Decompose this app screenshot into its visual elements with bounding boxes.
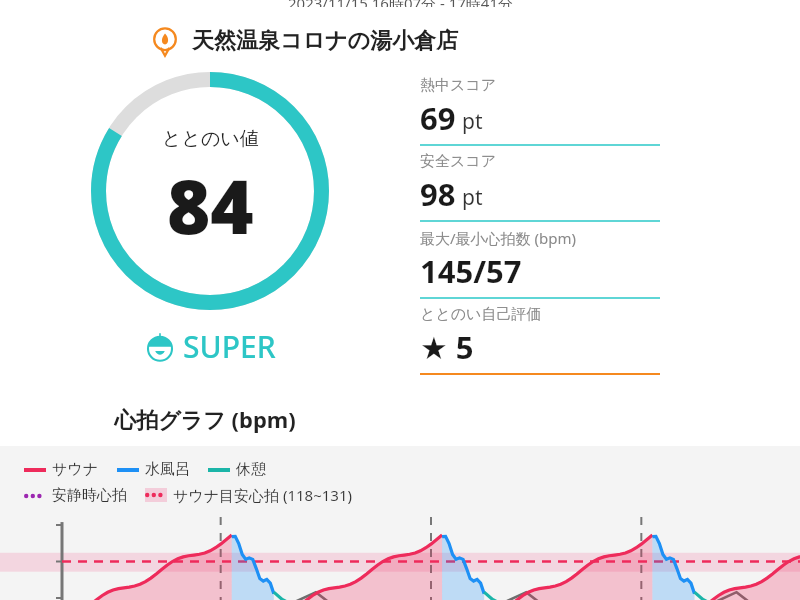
staticText: ととのい自己評価 xyxy=(420,305,542,324)
staticText: ★ 5 xyxy=(420,326,474,368)
staticText: 145/57 xyxy=(420,250,522,292)
staticText: 天然温泉コロナの湯小倉店 xyxy=(192,27,459,55)
staticText: 心拍グラフ (bpm) xyxy=(0,404,410,434)
staticText: ととのい値 xyxy=(162,127,259,151)
button[interactable]: Super rank mascot xyxy=(145,326,276,367)
staticText: 熱中スコア xyxy=(420,76,497,95)
other: Super rank mascot xyxy=(145,332,175,362)
button[interactable]: ととのい自己評価 xyxy=(420,299,660,375)
button[interactable]: Sauna location xyxy=(150,26,800,56)
staticText: 安全スコア xyxy=(420,152,497,171)
staticText: 安静時心拍 xyxy=(52,486,127,505)
staticText: 98 xyxy=(420,173,456,215)
staticText: サウナ xyxy=(52,460,99,479)
button[interactable]: 最大/最小心拍数 (bpm) xyxy=(420,222,660,299)
staticText: 2023/11/15 16時07分 - 17時41分 xyxy=(288,0,513,7)
staticText: pt xyxy=(462,183,483,212)
staticText: pt xyxy=(462,107,483,136)
staticText: 休憩 xyxy=(236,460,266,479)
button[interactable]: 安全スコア xyxy=(420,146,660,222)
staticText: サウナ目安心拍 (118~131) xyxy=(173,485,353,505)
button[interactable]: 熱中スコア xyxy=(420,70,660,146)
staticText: 84 xyxy=(167,155,254,256)
staticText: 最大/最小心拍数 (bpm) xyxy=(420,228,576,248)
staticText: 69 xyxy=(420,97,456,139)
staticText: 水風呂 xyxy=(145,460,190,479)
button[interactable]: ととのい値 xyxy=(89,70,331,312)
staticText: SUPER xyxy=(183,326,276,367)
other: Sauna location xyxy=(150,26,180,56)
